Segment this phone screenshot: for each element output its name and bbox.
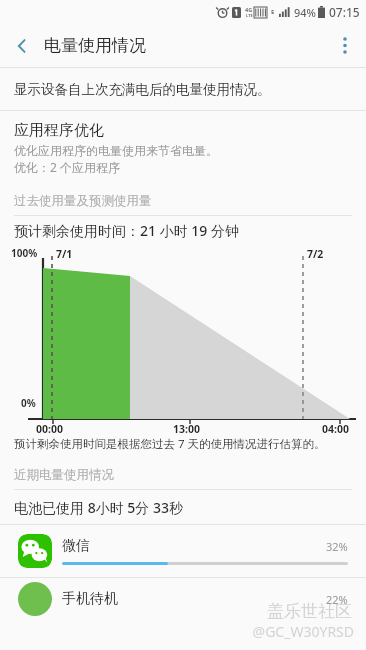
staticText: 手机待机 (62, 590, 118, 608)
staticText: 预计剩余使用时间：21 小时 19 分钟 (14, 221, 239, 240)
staticText: @GC_W30YRSD (252, 622, 354, 641)
staticText: 4G (245, 6, 253, 13)
staticText: 预计剩余使用时间是根据您过去 7 天的使用情况进行估算的。 (14, 436, 326, 452)
staticText: 显示设备自上次充满电后的电量使用情况。 (14, 81, 271, 98)
staticText: 优化：2 个应用程序 (14, 159, 120, 175)
staticText: 7/2 (307, 247, 324, 261)
staticText: 优化应用程序的电量使用来节省电量。 (14, 143, 218, 158)
staticText: 盖乐世社区 (267, 601, 352, 622)
staticText: 100% (11, 246, 38, 260)
staticText: 07:15 (329, 4, 360, 20)
button[interactable]: 微信 (0, 525, 366, 577)
staticText: 32% (326, 539, 348, 554)
staticText: 应用程序优化 (14, 121, 104, 140)
staticText: E (271, 8, 275, 16)
staticText: 13:00 (173, 422, 200, 436)
staticText: 00:00 (36, 422, 63, 436)
staticText: 94% (294, 5, 316, 20)
staticText: 电量使用情况 (44, 35, 146, 56)
staticText: LTE (246, 13, 253, 18)
staticText: 7/1 (56, 247, 73, 261)
staticText: 0% (21, 396, 36, 410)
button[interactable]: More options (324, 24, 366, 67)
button[interactable]: Back (0, 24, 44, 67)
staticText: 近期电量使用情况 (14, 467, 114, 483)
staticText: 22% (326, 592, 348, 607)
staticText: 过去使用量及预测使用量 (14, 193, 152, 209)
staticText: 微信 (62, 537, 90, 555)
staticText: 04:00 (322, 422, 349, 436)
button[interactable]: 应用程序优化 (0, 111, 366, 185)
button[interactable]: 手机待机 (0, 578, 366, 608)
staticText: 电池已使用 8小时 5分 33秒 (14, 498, 183, 517)
